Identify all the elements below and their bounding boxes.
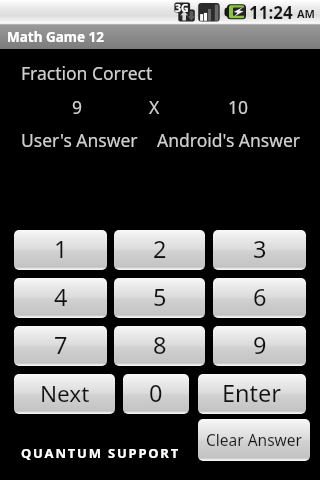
staticText: AM bbox=[297, 6, 315, 21]
staticText: Android's Answer bbox=[157, 128, 301, 152]
button[interactable]: 6 bbox=[213, 278, 306, 318]
button[interactable]: Clear Answer bbox=[198, 419, 310, 461]
staticText: Next bbox=[40, 378, 90, 409]
staticText: 3 bbox=[253, 233, 267, 265]
staticText: 11:24 bbox=[249, 1, 293, 24]
button[interactable]: 8 bbox=[114, 326, 205, 366]
staticText: Clear Answer bbox=[206, 429, 302, 450]
button[interactable]: Next bbox=[14, 374, 115, 414]
staticText: 10 bbox=[228, 95, 249, 119]
staticText: 1 bbox=[54, 233, 68, 265]
staticText: 2 bbox=[153, 233, 167, 265]
staticText: QUANTUM SUPPORT bbox=[21, 444, 180, 462]
staticText: 0 bbox=[149, 377, 163, 409]
button[interactable]: 0 bbox=[123, 374, 189, 414]
staticText: Enter bbox=[222, 377, 282, 409]
staticText: 7 bbox=[54, 329, 68, 361]
button[interactable]: 5 bbox=[114, 278, 205, 318]
button[interactable]: 4 bbox=[14, 278, 107, 318]
staticText: User's Answer bbox=[21, 128, 138, 152]
staticText: 8 bbox=[153, 329, 167, 361]
staticText: 6 bbox=[253, 281, 267, 313]
button[interactable]: 9 bbox=[213, 326, 306, 366]
button[interactable]: 1 bbox=[14, 230, 107, 270]
button[interactable]: 3 bbox=[213, 230, 306, 270]
staticText: Math Game 12 bbox=[7, 28, 104, 46]
staticText: X bbox=[149, 95, 160, 119]
button[interactable]: 2 bbox=[114, 230, 205, 270]
staticText: 3G bbox=[175, 1, 189, 15]
staticText: 4 bbox=[54, 281, 68, 313]
staticText: 9 bbox=[253, 329, 267, 361]
staticText: 5 bbox=[153, 281, 167, 313]
staticText: Fraction Correct bbox=[21, 61, 153, 85]
staticText: 9 bbox=[72, 95, 83, 119]
button[interactable]: Enter bbox=[198, 374, 306, 414]
button[interactable]: 7 bbox=[14, 326, 107, 366]
